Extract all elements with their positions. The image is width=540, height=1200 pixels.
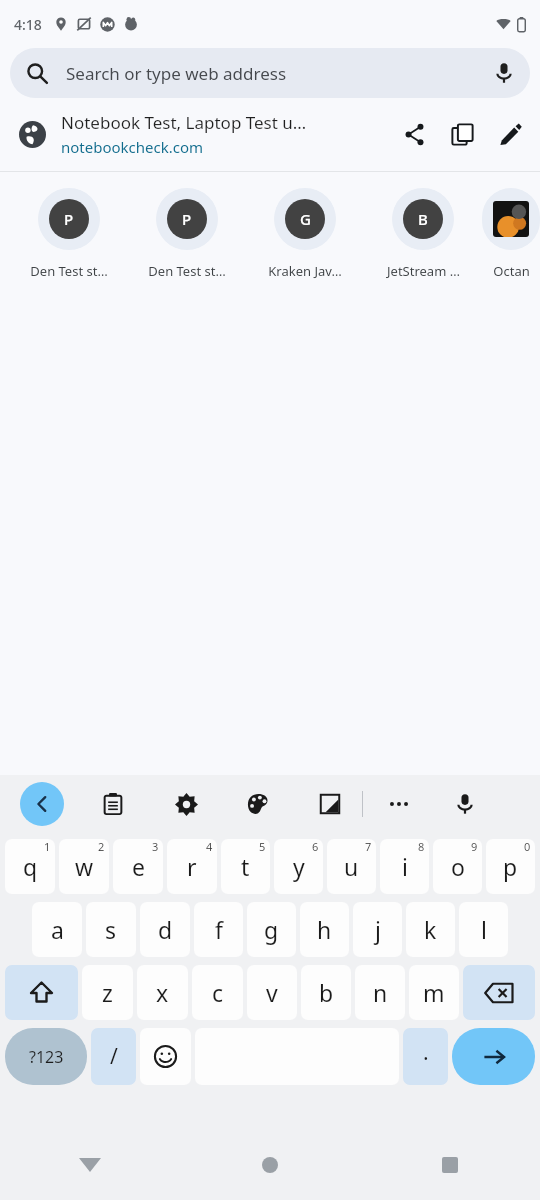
staticText: j bbox=[375, 914, 381, 945]
button[interactable]: Backspace bbox=[463, 965, 535, 1020]
button[interactable]: Share bbox=[390, 110, 438, 158]
button[interactable]: Go bbox=[452, 1028, 535, 1085]
button[interactable]: / bbox=[91, 1028, 136, 1085]
button[interactable]: d bbox=[140, 902, 190, 957]
button[interactable]: ?123 bbox=[5, 1028, 87, 1085]
staticText: B bbox=[418, 209, 428, 229]
button[interactable]: i bbox=[380, 839, 429, 894]
staticText: z bbox=[102, 977, 113, 1008]
staticText: l bbox=[481, 914, 487, 945]
staticText: s bbox=[105, 914, 117, 945]
staticText: 1 bbox=[44, 839, 51, 854]
button[interactable]: z bbox=[82, 965, 133, 1020]
staticText: . bbox=[423, 1038, 429, 1067]
button[interactable]: q bbox=[5, 839, 55, 894]
staticText: o bbox=[451, 851, 465, 882]
staticText: notebookcheck.com bbox=[61, 137, 204, 157]
button[interactable]: Octan bbox=[482, 172, 540, 292]
button[interactable]: Hide keyboard bbox=[0, 1130, 180, 1200]
staticText: p bbox=[503, 851, 518, 882]
staticText: 8 bbox=[418, 839, 425, 854]
button[interactable]: Recent apps bbox=[360, 1130, 540, 1200]
staticText: x bbox=[156, 977, 169, 1008]
staticText: 4:18 bbox=[14, 15, 42, 34]
button[interactable]: g bbox=[247, 902, 296, 957]
staticText: Octan bbox=[493, 262, 530, 280]
button[interactable]: r bbox=[167, 839, 217, 894]
staticText: g bbox=[264, 914, 279, 945]
staticText: v bbox=[266, 977, 278, 1008]
staticText: ?123 bbox=[29, 1046, 64, 1068]
button[interactable]: G bbox=[246, 172, 364, 292]
button[interactable]: P bbox=[128, 172, 246, 292]
staticText: n bbox=[373, 977, 388, 1008]
staticText: t bbox=[241, 851, 250, 882]
button[interactable]: s bbox=[86, 902, 136, 957]
button[interactable]: Settings bbox=[166, 784, 206, 824]
button[interactable]: w bbox=[59, 839, 109, 894]
button[interactable]: . bbox=[403, 1028, 448, 1085]
button[interactable]: Notebook Test, Laptop Test u… bbox=[0, 98, 540, 170]
staticText: k bbox=[424, 914, 437, 945]
staticText: 3 bbox=[152, 839, 159, 854]
button[interactable]: Clipboard bbox=[93, 784, 133, 824]
button[interactable]: More options bbox=[379, 784, 419, 824]
button[interactable]: Voice input bbox=[445, 784, 485, 824]
button[interactable]: u bbox=[327, 839, 376, 894]
staticText: 0 bbox=[524, 839, 531, 854]
button[interactable]: Copy bbox=[438, 110, 486, 158]
staticText: m bbox=[423, 977, 445, 1008]
button[interactable]: f bbox=[194, 902, 243, 957]
staticText: 7 bbox=[365, 839, 372, 854]
staticText: P bbox=[64, 209, 74, 229]
button[interactable]: Shift bbox=[5, 965, 78, 1020]
staticText: f bbox=[215, 914, 223, 945]
button[interactable]: One-handed mode bbox=[310, 784, 350, 824]
staticText: Notebook Test, Laptop Test u… bbox=[61, 111, 307, 134]
button[interactable]: Home bbox=[180, 1130, 360, 1200]
button[interactable]: Emoji bbox=[140, 1028, 191, 1085]
button[interactable]: k bbox=[406, 902, 455, 957]
staticText: 9 bbox=[471, 839, 478, 854]
staticText: r bbox=[187, 851, 197, 882]
button[interactable]: Themes bbox=[238, 784, 278, 824]
staticText: c bbox=[212, 977, 224, 1008]
button[interactable]: h bbox=[300, 902, 349, 957]
button[interactable]: l bbox=[459, 902, 508, 957]
button[interactable]: p bbox=[486, 839, 535, 894]
staticText: 6 bbox=[312, 839, 319, 854]
staticText: Den Test st… bbox=[148, 262, 226, 280]
staticText: / bbox=[110, 1042, 118, 1071]
staticText: P bbox=[182, 209, 192, 229]
button[interactable]: t bbox=[221, 839, 270, 894]
button[interactable]: Edit query bbox=[486, 110, 534, 158]
staticText: y bbox=[293, 851, 305, 882]
button[interactable]: B bbox=[364, 172, 482, 292]
button[interactable]: x bbox=[137, 965, 188, 1020]
button[interactable]: n bbox=[355, 965, 405, 1020]
staticText: e bbox=[132, 851, 145, 882]
staticText: Search or type web address bbox=[66, 62, 287, 85]
button[interactable]: j bbox=[353, 902, 402, 957]
button[interactable]: o bbox=[433, 839, 482, 894]
button[interactable]: c bbox=[192, 965, 243, 1020]
button[interactable]: Search or type web address bbox=[10, 48, 530, 98]
staticText: d bbox=[158, 914, 173, 945]
staticText: u bbox=[344, 851, 359, 882]
button[interactable]: P bbox=[10, 172, 128, 292]
staticText: JetStream … bbox=[387, 262, 460, 280]
button[interactable]: e bbox=[113, 839, 163, 894]
button[interactable]: Voice search bbox=[482, 51, 526, 95]
button[interactable]: m bbox=[409, 965, 459, 1020]
staticText: i bbox=[402, 851, 408, 882]
button[interactable]: b bbox=[301, 965, 351, 1020]
staticText: a bbox=[51, 914, 64, 945]
button[interactable]: y bbox=[274, 839, 323, 894]
staticText: G bbox=[300, 209, 311, 229]
button[interactable]: v bbox=[247, 965, 297, 1020]
staticText: 2 bbox=[98, 839, 105, 854]
button[interactable]: Back bbox=[20, 782, 64, 826]
staticText: 5 bbox=[259, 839, 266, 854]
button[interactable]: a bbox=[32, 902, 82, 957]
